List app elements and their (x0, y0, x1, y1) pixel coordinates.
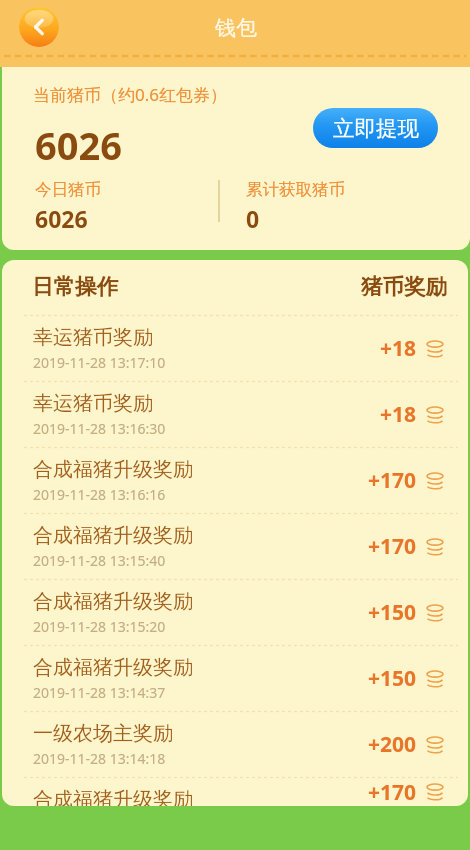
staticText: 合成福猪升级奖励 (33, 523, 193, 548)
staticText: +150 (368, 598, 417, 627)
staticText: 2019-11-28 13:17:10 (33, 353, 166, 372)
staticText: 2019-11-28 13:15:40 (33, 551, 166, 570)
button[interactable]: 合成福猪升级奖励 (2, 448, 468, 513)
button[interactable]: 一级农场主奖励 (2, 712, 468, 777)
button[interactable]: 合成福猪升级奖励 (2, 778, 468, 806)
staticText: +18 (380, 334, 417, 363)
staticText: 6026 (35, 203, 88, 234)
staticText: +170 (368, 778, 417, 806)
staticText: 2019-11-28 13:14:37 (33, 683, 166, 702)
button[interactable]: 合成福猪升级奖励 (2, 514, 468, 579)
button[interactable]: 立即提现 (313, 108, 438, 148)
staticText: +170 (368, 466, 417, 495)
staticText: 合成福猪升级奖励 (33, 589, 193, 614)
staticText: 合成福猪升级奖励 (33, 787, 193, 806)
staticText: 合成福猪升级奖励 (33, 457, 193, 482)
button[interactable]: 合成福猪升级奖励 (2, 646, 468, 711)
staticText: 日常操作 (32, 273, 118, 300)
staticText: 2019-11-28 13:16:16 (33, 485, 166, 504)
staticText: 累计获取猪币 (246, 179, 345, 200)
staticText: 6026 (35, 119, 122, 171)
staticText: 2019-11-28 13:16:30 (33, 419, 166, 438)
button[interactable]: 幸运猪币奖励 (2, 382, 468, 447)
staticText: 立即提现 (333, 115, 419, 142)
staticText: +18 (380, 400, 417, 429)
staticText: 幸运猪币奖励 (33, 391, 153, 416)
staticText: 0 (246, 203, 260, 234)
button[interactable]: 合成福猪升级奖励 (2, 580, 468, 645)
staticText: 2019-11-28 13:14:18 (33, 749, 166, 768)
staticText: +170 (368, 532, 417, 561)
button[interactable]: 幸运猪币奖励 (2, 316, 468, 381)
button[interactable]: Back (19, 7, 59, 47)
staticText: 幸运猪币奖励 (33, 325, 153, 350)
staticText: 一级农场主奖励 (33, 721, 173, 746)
staticText: 今日猪币 (35, 179, 101, 200)
staticText: 2019-11-28 13:15:20 (33, 617, 166, 636)
staticText: +200 (368, 730, 417, 759)
staticText: +150 (368, 664, 417, 693)
staticText: 猪币奖励 (361, 273, 447, 300)
staticText: 钱包 (215, 15, 257, 41)
staticText: 合成福猪升级奖励 (33, 655, 193, 680)
staticText: 当前猪币（约0.6红包券） (33, 83, 228, 106)
